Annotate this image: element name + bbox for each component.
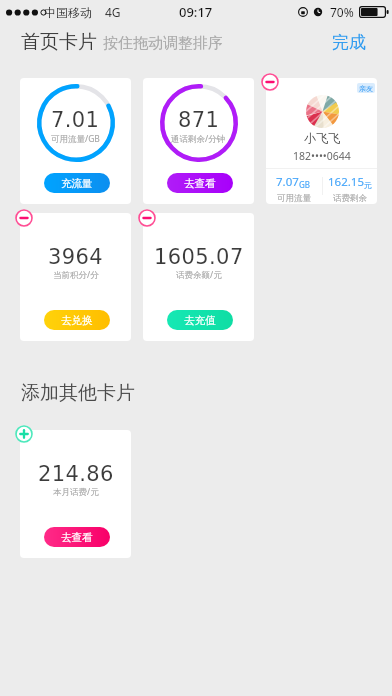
staticText: 去兑换 [61,314,93,327]
staticText: 添加其他卡片 [21,381,135,405]
button[interactable]: 去兑换 [44,310,110,330]
staticText: 通话剩余/分钟 [171,133,226,145]
staticText: 去查看 [184,177,216,190]
staticText: 去查看 [61,531,93,544]
staticText: 按住拖动调整排序 [103,34,223,53]
staticText: 亲友 [359,84,373,93]
button[interactable]: Add card [15,425,33,443]
staticText: GB [299,179,311,190]
staticText: 70% [330,4,354,20]
button[interactable]: 充流量 [44,173,110,193]
staticText: 7.01 [51,108,100,132]
staticText: 7.07 [276,174,299,190]
staticText: 小飞飞 [304,130,340,145]
staticText: 去充值 [184,314,216,327]
button[interactable]: 214.86 [20,430,131,558]
staticText: 元 [364,180,372,190]
staticText: 话费剩余 [333,193,367,204]
staticText: 09:17 [179,3,213,21]
button[interactable]: 去充值 [167,310,233,330]
staticText: 完成 [332,32,366,53]
staticText: 214.86 [38,462,114,486]
staticText: 话费余额/元 [176,269,222,281]
button[interactable]: 完成 [332,32,366,53]
staticText: 4G [105,4,121,20]
staticText: 中国移动 [44,5,92,20]
staticText: 可用流量/GB [51,133,100,145]
staticText: 3964 [48,245,104,269]
button[interactable]: 871 [143,78,254,204]
staticText: 871 [178,108,220,132]
button[interactable]: Remove card [15,209,33,227]
staticText: 首页卡片 [21,30,97,54]
staticText: 本月话费/元 [53,486,99,498]
button[interactable]: Remove card [138,209,156,227]
staticText: 充流量 [61,177,93,190]
button[interactable]: 亲友 [266,78,377,204]
button[interactable]: Remove card [261,73,279,91]
button[interactable]: 去查看 [44,527,110,547]
button[interactable]: 3964 [20,213,131,341]
staticText: 当前积分/分 [53,269,99,281]
staticText: 182••••0644 [293,149,351,163]
staticText: 162.15 [328,174,364,190]
button[interactable]: 去查看 [167,173,233,193]
button[interactable]: 7.01 [20,78,131,204]
staticText: 可用流量 [277,193,311,204]
staticText: 1605.07 [154,245,244,269]
button[interactable]: 1605.07 [143,213,254,341]
